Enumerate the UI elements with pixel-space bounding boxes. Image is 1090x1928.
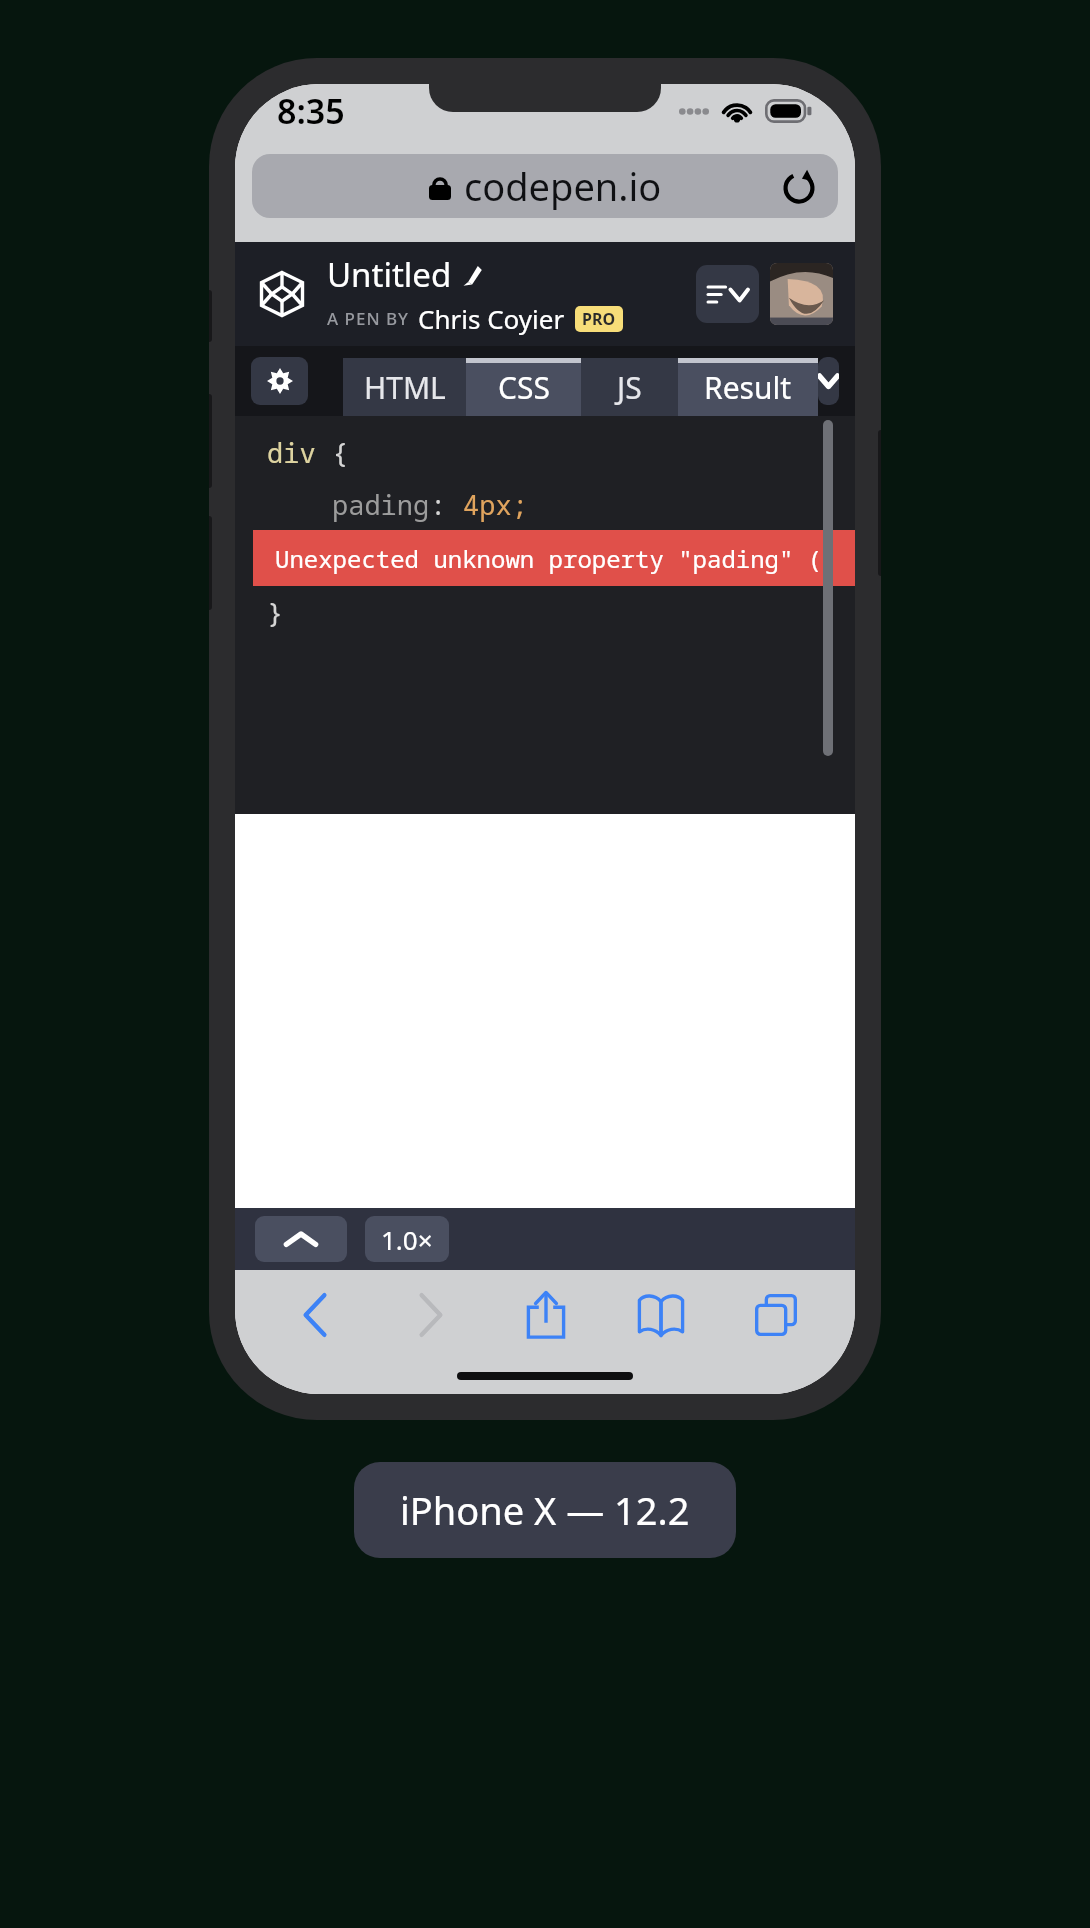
button[interactable]: iPhone X — 12.2 [354,1462,736,1558]
staticText: Untitled [327,252,452,297]
button[interactable]: Result [678,358,818,416]
staticText: PRO [582,308,616,330]
button[interactable]: Settings [251,357,308,405]
staticText: } [267,594,284,631]
staticText: div [267,434,316,471]
staticText: { [316,434,349,471]
staticText: JS [617,367,642,408]
staticText: pading [332,486,430,523]
staticText: iPhone X — 12.2 [400,1484,690,1536]
staticText: Chris Coyier [418,301,565,336]
button[interactable]: Tabs [718,1280,833,1350]
staticText: CSS [498,367,550,408]
staticText: Result [704,367,792,408]
button[interactable]: HTML [343,358,466,416]
button[interactable]: Back [257,1280,373,1350]
staticText: 8:35 [277,88,345,134]
button[interactable]: Profile [770,263,833,325]
button[interactable]: JS [581,358,678,416]
button[interactable]: Editor layout menu [696,265,759,323]
staticText: 1.0× [381,1222,433,1257]
staticText: A PEN BY [327,307,410,330]
button[interactable]: Collapse preview [255,1216,347,1262]
staticText: : [430,486,463,523]
button[interactable]: Expand panel [818,357,839,405]
button[interactable]: Share [488,1280,603,1350]
button[interactable]: CSS [466,358,581,416]
staticText: 4px; [463,486,528,523]
button[interactable]: codepen.io [252,154,838,218]
staticText: codepen.io [464,160,662,212]
staticText: Unexpected unknown property "pading" ( [275,542,823,575]
button[interactable]: Bookmarks [603,1280,718,1350]
button[interactable]: 1.0× [365,1216,449,1262]
button[interactable]: Reload [778,165,820,207]
button[interactable]: Forward [373,1280,488,1350]
staticText: HTML [364,367,446,408]
